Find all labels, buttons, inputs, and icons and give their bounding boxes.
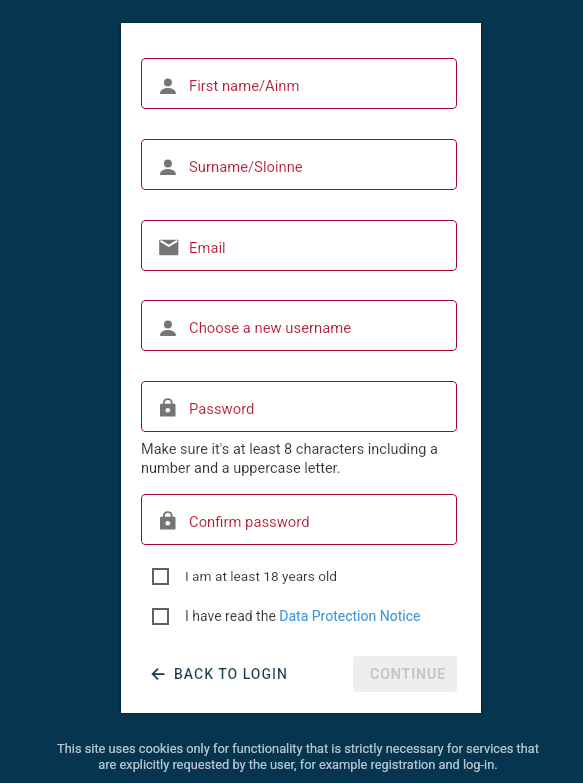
staticText: BACK TO LOGIN (174, 666, 288, 682)
other: Password (159, 511, 177, 529)
other: Person (159, 75, 177, 93)
staticText: Make sure it's at least 8 characters inc… (141, 441, 438, 477)
staticText: This site uses cookies only for function… (57, 741, 539, 772)
staticText: First name/Ainm (189, 77, 300, 94)
staticText: Surname/Sloinne (189, 158, 303, 175)
staticText: CONTINUE (370, 666, 447, 683)
button[interactable]: BACK TO LOGIN (141, 656, 353, 692)
other: Password (159, 398, 177, 416)
staticText: Confirm password (189, 513, 310, 530)
button[interactable]: I am at least 18 years old (141, 565, 457, 587)
other: Email (159, 237, 177, 255)
staticText: Choose a new username (189, 319, 352, 336)
button[interactable]: Email (141, 220, 457, 271)
button[interactable]: Password (141, 494, 457, 545)
staticText: Email (189, 239, 226, 256)
button[interactable]: Password (141, 381, 457, 432)
button[interactable]: Person (141, 139, 457, 190)
staticText: Password (189, 400, 255, 417)
other: Person (159, 317, 177, 335)
staticText: I am at least 18 years old (185, 568, 338, 584)
other: Person (159, 156, 177, 174)
button[interactable]: Person (141, 300, 457, 351)
button[interactable]: CONTINUE (353, 656, 457, 692)
button[interactable]: Person (141, 58, 457, 109)
button[interactable]: I have read the Data Protection Notice (141, 605, 457, 627)
staticText: I have read the Data Protection Notice (185, 608, 421, 624)
